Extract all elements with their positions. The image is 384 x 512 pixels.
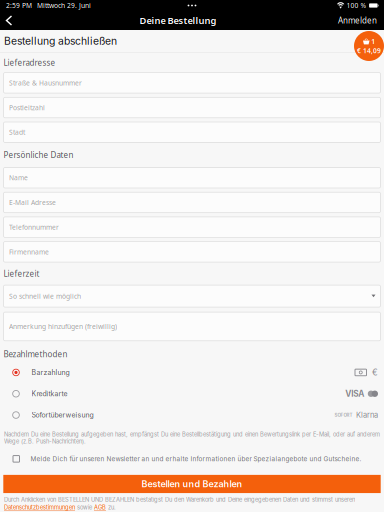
staticText: € (372, 367, 378, 378)
staticText: 2:59 PM (6, 1, 32, 10)
button[interactable]: Barzahlung (0, 362, 384, 383)
staticText: Name (9, 173, 28, 182)
staticText: Deine Bestellung (139, 14, 216, 27)
staticText: Firmenname (9, 247, 49, 256)
staticText: So schnell wie möglich (9, 292, 81, 301)
staticText: Datenschutzbestimmungen (4, 504, 75, 511)
button[interactable]: Bestellen und Bezahlen (3, 475, 381, 493)
staticText: 1 (371, 37, 375, 46)
staticText: Melde Dich für unseren Newsletter an und… (30, 455, 361, 463)
staticText: Anmelden (338, 15, 377, 26)
button[interactable]: AGB (94, 504, 106, 511)
staticText: Stadt (9, 128, 25, 137)
staticText: sowie (75, 504, 94, 511)
button[interactable]: Kreditkarte (0, 383, 384, 404)
button[interactable]: Melde Dich für unseren Newsletter an und… (0, 454, 384, 464)
staticText: Durch Anklicken von BESTELLEN UND BEZAHL… (4, 496, 355, 503)
button[interactable]: Anmelden (338, 11, 384, 30)
staticText: Anmerkung hinzufügen (freiwillig) (9, 322, 117, 331)
staticText: Bestellen und Bezahlen (141, 478, 242, 489)
staticText: Persönliche Daten (3, 150, 73, 160)
staticText: € 14,09 (357, 46, 381, 55)
staticText: AGB (94, 504, 106, 511)
staticText: E-Mail Adresse (9, 198, 56, 207)
staticText: Postleitzahl (9, 103, 45, 112)
staticText: Barzahlung (31, 368, 69, 377)
staticText: Kreditkarte (31, 390, 67, 398)
staticText: Nachdem Du eine Bestellung aufgegeben ha… (4, 431, 380, 445)
staticText: Telefonnummer (9, 223, 59, 232)
button[interactable]: Zurück (0, 11, 18, 30)
staticText: VISA (345, 389, 364, 399)
staticText: Mittwoch 29. Juni (37, 1, 91, 10)
staticText: Lieferadresse (3, 57, 55, 68)
staticText: Sofortüberweisung (31, 411, 93, 419)
staticText: Klarna (356, 410, 378, 419)
staticText: zu. (106, 504, 116, 511)
staticText: 100 % (347, 1, 367, 10)
staticText: Straße & Hausnummer (9, 78, 82, 87)
button[interactable]: Sofortüberweisung (0, 404, 384, 426)
staticText: Bestellung abschließen (4, 35, 117, 47)
button[interactable]: Warenkorb, 1 Artikel, 14,09 Euro (354, 31, 384, 61)
staticText: Bezahlmethoden (3, 349, 67, 359)
staticText: SOFORT (334, 412, 352, 418)
button[interactable]: Datenschutzbestimmungen (4, 504, 75, 511)
staticText: Lieferzeit (3, 268, 39, 279)
